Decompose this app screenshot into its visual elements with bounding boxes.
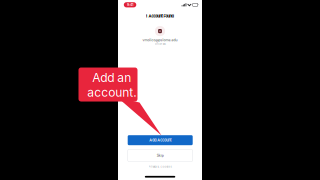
- button[interactable]: Privacy & cookies: [118, 164, 202, 170]
- staticText: Add Account: [149, 138, 171, 142]
- staticText: Add an account.: [87, 70, 136, 99]
- staticText: Privacy & cookies: [148, 165, 171, 168]
- staticText: 1 Account Found: [145, 14, 174, 18]
- button[interactable]: Add Account: [128, 135, 193, 145]
- staticText: 9:41: [127, 3, 133, 7]
- staticText: vmolico@pslome.edu: [142, 38, 177, 42]
- button[interactable]: Skip: [128, 149, 193, 161]
- staticText: Office 365: [154, 43, 165, 46]
- staticText: Skip: [157, 153, 164, 158]
